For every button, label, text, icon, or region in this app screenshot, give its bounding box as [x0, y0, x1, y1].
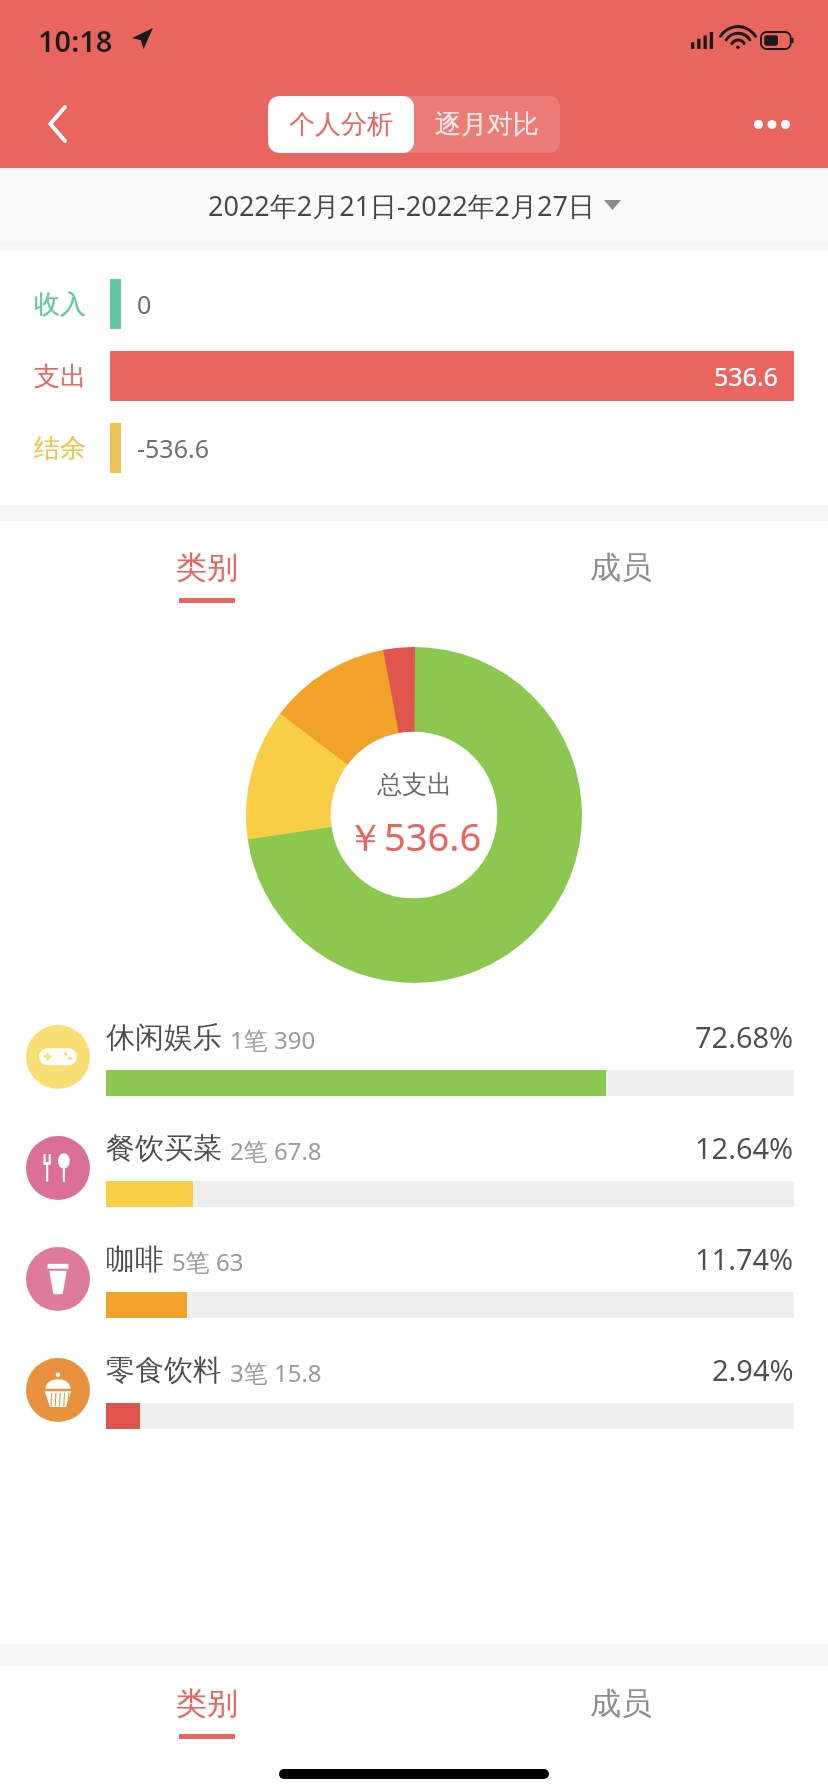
- button[interactable]: 2022年2月21日-2022年2月27日: [0, 168, 828, 242]
- staticText: ￥536.6: [346, 810, 482, 862]
- button[interactable]: 成员: [414, 1666, 828, 1756]
- staticText: 收入: [34, 288, 98, 321]
- staticText: 逐月对比: [435, 108, 539, 141]
- staticText: 536.6: [714, 359, 778, 393]
- button[interactable]: 类别: [0, 521, 414, 629]
- staticText: -536.6: [137, 431, 209, 465]
- staticText: 1笔 390: [230, 1023, 695, 1056]
- staticText: 2022年2月21日-2022年2月27日: [208, 187, 595, 224]
- button[interactable]: 成员: [414, 521, 828, 629]
- button[interactable]: 逐月对比: [414, 96, 560, 153]
- staticText: 成员: [590, 548, 652, 587]
- button[interactable]: 休闲娱乐: [0, 1001, 828, 1112]
- button[interactable]: 类别: [0, 1666, 414, 1756]
- staticText: 咖啡: [106, 1241, 164, 1278]
- staticText: 3笔 15.8: [230, 1356, 712, 1389]
- staticText: 11.74%: [695, 1239, 794, 1278]
- staticText: 零食饮料: [106, 1352, 222, 1389]
- staticText: 成员: [590, 1684, 652, 1723]
- button[interactable]: Back: [28, 94, 88, 154]
- button[interactable]: 个人分析: [268, 96, 414, 153]
- staticText: 10:18: [38, 21, 113, 60]
- staticText: 类别: [176, 548, 238, 587]
- button[interactable]: More options: [742, 94, 802, 154]
- staticText: 72.68%: [695, 1017, 794, 1056]
- staticText: 餐饮买菜: [106, 1130, 222, 1167]
- button[interactable]: 咖啡: [0, 1223, 828, 1334]
- staticText: 5笔 63: [172, 1245, 695, 1278]
- staticText: 支出: [34, 360, 98, 393]
- staticText: 2笔 67.8: [230, 1134, 695, 1167]
- staticText: 个人分析: [289, 108, 393, 141]
- staticText: 0: [137, 287, 152, 321]
- staticText: 总支出: [377, 769, 452, 800]
- button[interactable]: 零食饮料: [0, 1334, 828, 1445]
- staticText: 类别: [176, 1684, 238, 1723]
- staticText: 2.94%: [712, 1350, 794, 1389]
- staticText: 休闲娱乐: [106, 1019, 222, 1056]
- staticText: 结余: [34, 432, 98, 465]
- staticText: 12.64%: [695, 1128, 794, 1167]
- button[interactable]: 餐饮买菜: [0, 1112, 828, 1223]
